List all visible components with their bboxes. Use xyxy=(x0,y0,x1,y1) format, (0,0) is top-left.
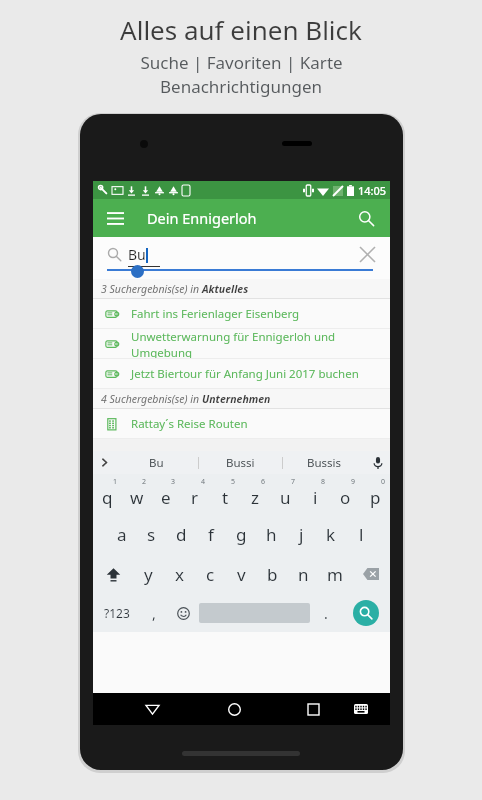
button[interactable]: Bussi xyxy=(199,451,282,474)
button[interactable]: Unwetterwarnung für Ennigerloh und Umgeb… xyxy=(93,329,390,359)
button[interactable]: 0 xyxy=(360,474,390,514)
button[interactable]: Rattay´s Reise Routen xyxy=(93,409,390,439)
button[interactable]: m xyxy=(319,554,350,594)
staticText: 3 Suchergebnis(se) in xyxy=(101,282,202,296)
staticText: Fahrt ins Ferienlager Eisenberg xyxy=(131,306,300,322)
staticText: n xyxy=(298,563,309,586)
button[interactable]: Bu xyxy=(115,451,198,474)
staticText: , xyxy=(152,604,156,623)
button[interactable]: . xyxy=(310,594,341,632)
staticText: b xyxy=(267,563,278,586)
button[interactable]: 2 xyxy=(122,474,151,514)
button[interactable]: x xyxy=(164,554,195,594)
staticText: g xyxy=(236,523,247,546)
staticText: d xyxy=(176,523,187,546)
button[interactable]: k xyxy=(316,514,346,554)
button[interactable]: a xyxy=(107,514,136,554)
staticText: 3 xyxy=(171,477,176,487)
button[interactable]: 4 xyxy=(180,474,210,514)
staticText: z xyxy=(251,486,259,509)
staticText: Unwetterwarnung für Ennigerloh und Umgeb… xyxy=(131,329,390,359)
button[interactable]: Home xyxy=(219,694,249,724)
staticText: e xyxy=(161,486,171,509)
staticText: . xyxy=(324,604,328,623)
button[interactable]: b xyxy=(257,554,288,594)
button[interactable]: Bussis xyxy=(283,451,366,474)
staticText: l xyxy=(359,523,364,546)
button[interactable]: Clear xyxy=(354,241,380,267)
button[interactable]: ?123 xyxy=(93,594,140,632)
button[interactable]: d xyxy=(166,514,196,554)
button[interactable]: g xyxy=(226,514,256,554)
staticText: i xyxy=(313,486,318,509)
staticText: m xyxy=(327,563,343,586)
staticText: 4 xyxy=(201,477,206,487)
button[interactable]: y xyxy=(133,554,164,594)
button[interactable]: 1 xyxy=(93,474,122,514)
button[interactable]: 6 xyxy=(240,474,270,514)
staticText: f xyxy=(208,523,214,546)
staticText: c xyxy=(206,563,215,586)
button[interactable]: 8 xyxy=(300,474,330,514)
staticText: 14:05 xyxy=(358,183,387,198)
staticText: o xyxy=(340,486,351,509)
button[interactable]: f xyxy=(196,514,226,554)
button[interactable]: n xyxy=(288,554,319,594)
staticText: 0 xyxy=(381,477,386,487)
staticText: y xyxy=(144,563,153,586)
staticText: 9 xyxy=(351,477,356,487)
staticText: 7 xyxy=(291,477,296,487)
staticText: u xyxy=(280,486,291,509)
button[interactable]: Expand xyxy=(93,451,115,474)
staticText: Bu xyxy=(149,455,164,471)
button[interactable]: Keyboard xyxy=(346,694,376,724)
staticText: ?123 xyxy=(104,605,130,621)
staticText: Aktuelles xyxy=(202,282,249,296)
button[interactable]: l xyxy=(346,514,376,554)
button[interactable]: h xyxy=(256,514,286,554)
staticText: v xyxy=(237,563,246,586)
staticText: Alles auf einen Blick xyxy=(120,12,362,47)
staticText: w xyxy=(130,486,144,509)
staticText: 1 xyxy=(113,477,118,487)
button[interactable]: Emoji xyxy=(168,594,199,632)
button[interactable]: 5 xyxy=(210,474,240,514)
staticText: Unternehmen xyxy=(202,392,271,406)
staticText: s xyxy=(147,523,156,546)
staticText: Jetzt Biertour für Anfang Juni 2017 buch… xyxy=(131,366,359,382)
staticText: Rattay´s Reise Routen xyxy=(131,416,248,432)
button[interactable]: Jetzt Biertour für Anfang Juni 2017 buch… xyxy=(93,359,390,389)
button[interactable]: Search xyxy=(350,202,382,234)
button[interactable]: Voice input xyxy=(366,451,390,474)
staticText: h xyxy=(266,523,277,546)
button[interactable]: c xyxy=(195,554,226,594)
staticText: t xyxy=(222,486,229,509)
staticText: r xyxy=(191,486,199,509)
staticText: 5 xyxy=(231,477,236,487)
button[interactable]: Fahrt ins Ferienlager Eisenberg xyxy=(93,299,390,329)
staticText: Bussis xyxy=(307,455,342,471)
staticText: Suche | Favoriten | Karte xyxy=(140,51,343,74)
button[interactable]: Menu xyxy=(99,202,131,234)
staticText: x xyxy=(175,563,184,586)
staticText: 4 Suchergebnis(se) in xyxy=(101,392,202,406)
button[interactable]: j xyxy=(286,514,316,554)
button[interactable]: 9 xyxy=(330,474,360,514)
button[interactable]: Shift xyxy=(93,554,133,594)
staticText: a xyxy=(117,523,127,546)
button[interactable]: Back xyxy=(137,694,167,724)
staticText: 2 xyxy=(142,477,147,487)
staticText: p xyxy=(370,486,381,509)
button[interactable]: Backspace xyxy=(350,554,390,594)
staticText: 6 xyxy=(261,477,266,487)
button[interactable]: Search xyxy=(341,594,390,632)
staticText: k xyxy=(326,523,336,546)
button[interactable]: 7 xyxy=(270,474,300,514)
button[interactable]: 3 xyxy=(151,474,180,514)
button[interactable]: Recent apps xyxy=(298,694,328,724)
button[interactable]: s xyxy=(136,514,166,554)
button[interactable]: v xyxy=(226,554,257,594)
button[interactable]: , xyxy=(140,594,168,632)
staticText: Benachrichtigungen xyxy=(160,75,322,98)
